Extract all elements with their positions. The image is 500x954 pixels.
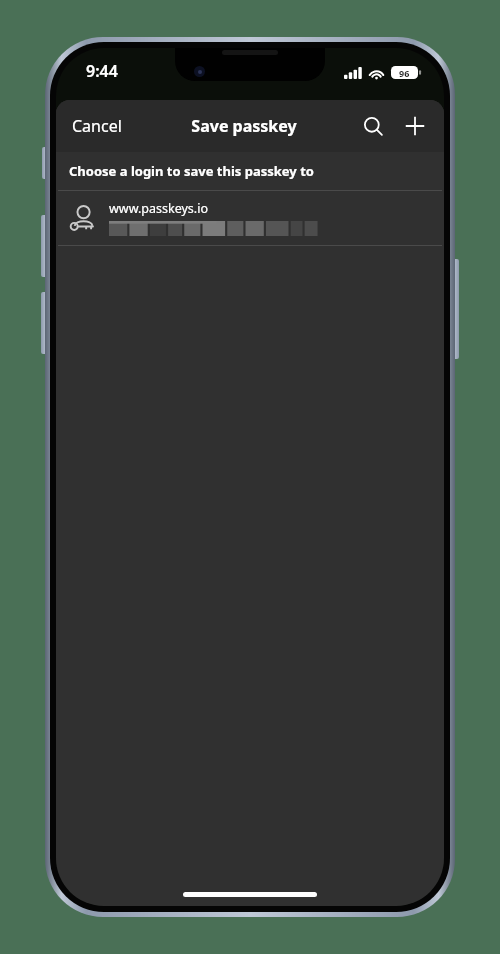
button[interactable]: Search [352,105,394,147]
staticText: Cancel [72,115,122,137]
button[interactable]: Add passkey [394,105,436,147]
staticText: www.passkeys.io [109,200,208,217]
button[interactable]: Cancel [56,105,138,147]
staticText: 96 [399,67,410,79]
staticText: 9:44 [86,60,118,82]
staticText: Choose a login to save this passkey to [69,162,314,180]
staticText: Save passkey [191,115,297,137]
button[interactable]: www.passkeys.io [56,191,444,245]
